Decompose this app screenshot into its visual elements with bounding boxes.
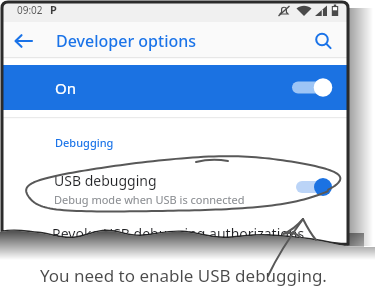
button[interactable]: Search — [308, 26, 338, 56]
staticText: On — [55, 78, 76, 98]
staticText: Debugging — [55, 135, 114, 150]
staticText: You need to enable USB debugging. — [40, 264, 327, 287]
button[interactable]: Back — [9, 26, 39, 56]
staticText: Developer options — [56, 30, 197, 52]
button[interactable]: On — [2, 65, 348, 110]
staticText: P — [50, 2, 57, 17]
staticText: USB debugging — [54, 171, 157, 190]
staticText: 09:02 — [17, 3, 43, 17]
staticText: Debug mode when USB is connected — [54, 192, 245, 207]
staticText: Revoke USB debugging authorizations — [52, 224, 305, 243]
button[interactable]: USB debugging — [2, 166, 348, 208]
